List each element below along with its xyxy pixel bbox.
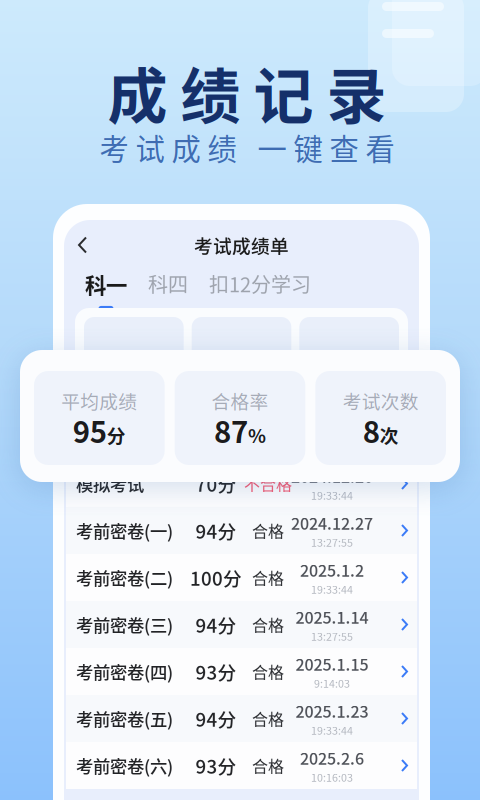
staticText: 合格 — [252, 754, 284, 777]
button[interactable]: 考前密卷(三) — [66, 601, 417, 648]
staticText: 2025.1.2 — [300, 558, 364, 581]
staticText: 13:27:55 — [311, 628, 353, 644]
staticText: 考前密卷(五) — [76, 706, 173, 731]
staticText: 2025.2.6 — [300, 746, 364, 769]
staticText: 不合格 — [244, 472, 292, 495]
staticText: 19:33:44 — [311, 581, 353, 597]
staticText: 科四 — [148, 269, 188, 298]
staticText: 8 — [363, 409, 380, 451]
staticText: 合格 — [252, 660, 284, 683]
staticText: 19:33:44 — [311, 722, 353, 738]
button[interactable]: 考前密卷(一) — [66, 507, 417, 554]
staticText: 合格 — [252, 566, 284, 589]
staticText: 考前密卷(四) — [76, 659, 173, 684]
button[interactable]: 考前密卷(四) — [66, 648, 417, 695]
staticText: 考试成绩单 — [194, 231, 289, 258]
staticText: 次 — [380, 421, 399, 448]
button[interactable]: 科一 — [85, 263, 127, 311]
staticText: 合格 — [252, 613, 284, 636]
staticText: 分 — [107, 421, 126, 448]
button[interactable]: 考前密卷(五) — [66, 695, 417, 742]
staticText: 扣12分学习 — [209, 269, 311, 298]
staticText: 模拟考试 — [76, 471, 144, 496]
staticText: % — [248, 421, 266, 448]
staticText: 93分 — [195, 752, 236, 779]
staticText: 2025.1.23 — [295, 699, 368, 722]
staticText: 94分 — [195, 517, 236, 544]
staticText: 13:27:55 — [311, 534, 353, 550]
staticText: 19:33:44 — [311, 487, 353, 503]
staticText: 合格率 — [211, 387, 268, 414]
staticText: 平均成绩 — [61, 387, 137, 414]
staticText: 87 — [214, 409, 248, 451]
staticText: 9:14:03 — [314, 675, 350, 691]
staticText: 2025.1.15 — [295, 652, 368, 675]
staticText: 考前密卷(二) — [76, 565, 173, 590]
staticText: 93分 — [195, 658, 236, 685]
staticText: 95 — [73, 409, 107, 451]
staticText: 100分 — [190, 564, 242, 591]
staticText: 2024.12.27 — [291, 511, 373, 534]
staticText: 考前密卷(六) — [76, 753, 173, 778]
staticText: 合格 — [252, 707, 284, 730]
staticText: 成绩记录 — [107, 49, 386, 136]
staticText: 2024.12.20 — [291, 464, 373, 487]
button[interactable]: 返回 — [64, 225, 101, 265]
button[interactable]: 考前密卷(二) — [66, 554, 417, 601]
staticText: 合格 — [252, 519, 284, 542]
staticText: 考前密卷(一) — [76, 518, 173, 543]
staticText: 考前密卷(三) — [76, 612, 173, 637]
button[interactable]: 科四 — [148, 263, 188, 309]
staticText: 考试次数 — [343, 387, 419, 414]
staticText: 94分 — [195, 705, 236, 732]
staticText: 94分 — [195, 611, 236, 638]
staticText: 10:16:03 — [311, 769, 353, 785]
staticText: 2025.1.14 — [295, 605, 368, 628]
button[interactable]: 模拟考试 — [66, 460, 417, 507]
button[interactable]: 扣12分学习 — [209, 263, 311, 309]
staticText: 考试成绩 一键查看 — [99, 126, 394, 168]
staticText: 科一 — [85, 269, 127, 300]
button[interactable]: 考前密卷(六) — [66, 742, 417, 789]
staticText: 70分 — [195, 470, 236, 497]
